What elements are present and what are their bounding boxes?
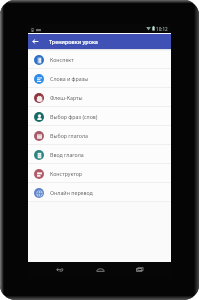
staticText: Ввод глагола [50,151,84,158]
button[interactable]: Слова и фразы [28,69,171,88]
staticText: Выбор фраз (слов) [50,113,98,120]
button[interactable]: Конструктор [28,164,171,183]
staticText: Конспект [50,56,74,63]
staticText: Слова и фразы [50,75,89,82]
staticText: 10:12 [156,26,168,32]
button[interactable]: Выбор глагола [28,126,171,145]
button[interactable]: Recents [132,262,146,276]
button[interactable]: Back [28,34,43,49]
button[interactable]: Back [53,262,67,276]
button[interactable]: Ввод глагола [28,145,171,164]
button[interactable]: Онлайн перевод [28,183,171,202]
button[interactable]: Флеш-Карты [28,88,171,107]
staticText: Флеш-Карты [50,94,83,101]
staticText: Онлайн перевод [50,189,93,196]
button[interactable]: Home [93,262,107,276]
staticText: Конструктор [50,170,83,177]
button[interactable]: Выбор фраз (слов) [28,107,171,126]
button[interactable]: Конспект [28,50,171,69]
staticText: Тренировки урока [49,38,98,45]
staticText: Выбор глагола [50,132,89,139]
